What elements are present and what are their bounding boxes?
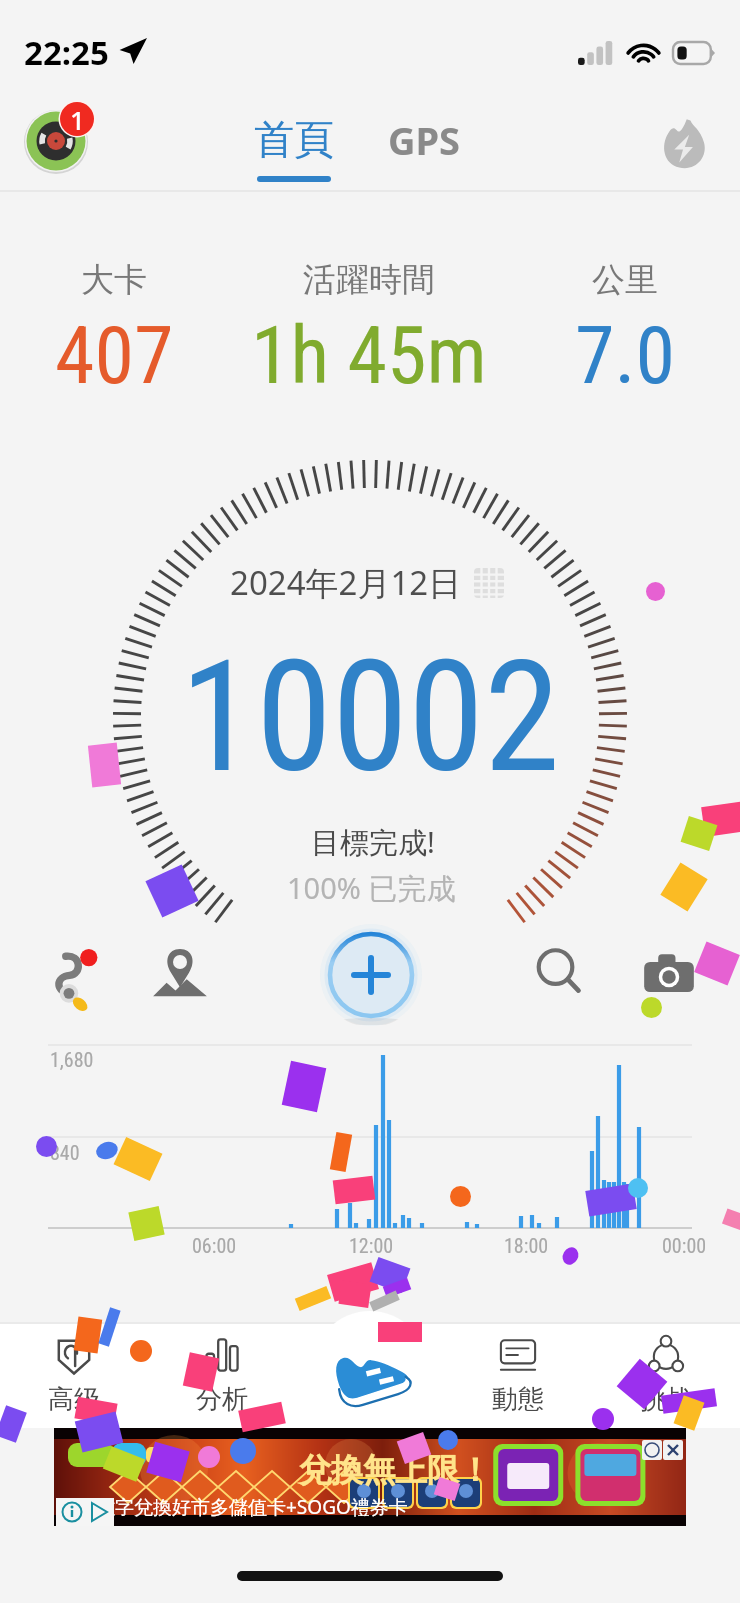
staticText: 動態: [492, 1383, 544, 1416]
button[interactable]: 高级: [30, 1330, 118, 1420]
staticText: 活躍時間: [303, 259, 435, 301]
button[interactable]: Add activity: [319, 923, 423, 1027]
staticText: 100% 已完成: [287, 868, 456, 908]
staticText: 1: [70, 102, 85, 136]
staticText: 目標完成!: [311, 822, 435, 862]
button[interactable]: 大卡: [0, 259, 228, 403]
staticText: GPS: [388, 114, 461, 166]
button[interactable]: Route: [44, 946, 108, 1010]
button[interactable]: Search: [532, 948, 588, 1004]
staticText: 840: [50, 1141, 80, 1164]
staticText: 10002: [180, 627, 561, 807]
button[interactable]: 分析: [178, 1330, 266, 1420]
button[interactable]: Advertisement: [54, 1428, 686, 1526]
button[interactable]: Trails: [152, 948, 208, 1004]
staticText: 407: [55, 309, 174, 403]
button[interactable]: Energy: [652, 113, 714, 175]
button[interactable]: GPS: [382, 110, 467, 170]
button[interactable]: Start activity: [313, 1311, 427, 1425]
staticText: 兌換無上限！: [299, 1450, 491, 1490]
staticText: 00:00: [662, 1234, 707, 1257]
staticText: 2024年2月12日: [230, 560, 462, 605]
staticText: 22:25: [24, 30, 109, 75]
staticText: 公里: [592, 259, 658, 301]
staticText: 分析: [196, 1383, 248, 1416]
staticText: 挑战: [640, 1383, 692, 1416]
button[interactable]: 公里: [510, 259, 740, 403]
button[interactable]: 動態: [474, 1330, 562, 1420]
staticText: 高级: [48, 1383, 100, 1416]
staticText: 06:00: [192, 1234, 237, 1257]
button[interactable]: Music record: [17, 98, 97, 178]
button[interactable]: 活躍時間: [228, 259, 510, 403]
staticText: 首頁: [254, 114, 334, 164]
staticText: 1,680: [50, 1048, 94, 1071]
staticText: 大卡: [81, 259, 147, 301]
staticText: 18:00: [504, 1234, 549, 1257]
staticText: 1h 45m: [251, 309, 487, 403]
staticText: 12:00: [349, 1234, 394, 1257]
staticText: 7.0: [575, 309, 676, 403]
button[interactable]: 挑战: [622, 1330, 710, 1420]
button[interactable]: 首頁: [254, 114, 334, 182]
staticText: 數字兌換好市多儲值卡+SOGO禮券卡: [96, 1494, 408, 1520]
button[interactable]: Camera: [642, 950, 696, 1004]
